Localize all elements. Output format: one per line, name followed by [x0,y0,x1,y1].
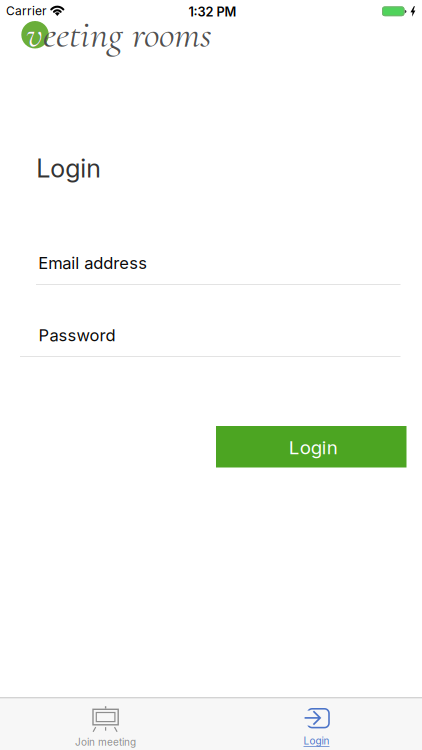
staticText: 1:32 PM [188,4,236,19]
button[interactable]: Join meeting [0,698,211,750]
button[interactable]: Login [216,426,406,467]
staticText: Password [38,325,115,345]
staticText: v [26,11,43,58]
staticText: veeting rooms [26,11,212,58]
button[interactable]: Password [20,321,400,357]
button[interactable]: Email address [36,249,400,285]
button[interactable]: Login [211,698,422,750]
staticText: Carrier [6,3,47,18]
staticText: Email address [38,253,147,273]
staticText: Login [36,153,101,184]
staticText: Join meeting [75,736,136,748]
staticText: Login [289,436,338,459]
staticText: Login [303,735,329,747]
